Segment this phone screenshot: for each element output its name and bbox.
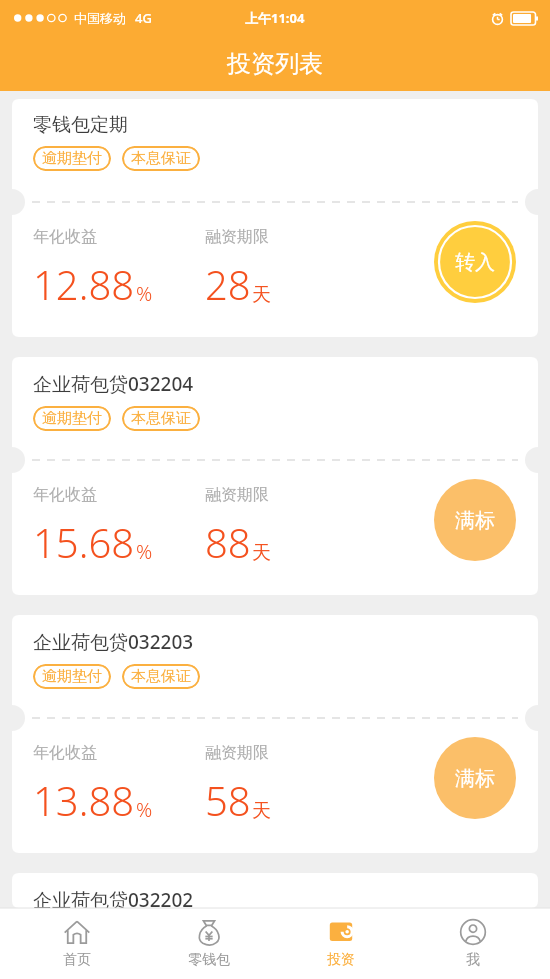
staticText: 逾期垫付 — [42, 667, 102, 686]
staticText: 企业荷包贷032203 — [33, 629, 194, 655]
button[interactable]: 本息保证 — [131, 409, 191, 428]
button[interactable]: 投资 — [286, 918, 396, 969]
staticText: 88 — [205, 515, 251, 569]
button[interactable]: 满标 — [434, 479, 516, 561]
staticText: 融资期限 — [205, 227, 269, 247]
staticText: 中国移动 — [74, 10, 126, 26]
button[interactable]: 逾期垫付 — [42, 409, 102, 428]
staticText: 天 — [252, 541, 271, 565]
staticText: 58 — [205, 773, 251, 827]
staticText: 4G — [135, 9, 152, 27]
staticText: 15.68 — [33, 515, 135, 569]
button[interactable]: 首页 — [22, 918, 132, 969]
staticText: 28 — [205, 257, 251, 311]
button[interactable]: 零钱包 — [154, 918, 264, 969]
button[interactable]: 本息保证 — [131, 667, 191, 686]
staticText: 零钱包定期 — [33, 113, 128, 137]
staticText: 年化收益 — [33, 485, 97, 505]
button[interactable]: 本息保证 — [131, 149, 191, 168]
staticText: 本息保证 — [131, 667, 191, 686]
staticText: 12.88 — [33, 257, 135, 311]
staticText: % — [136, 796, 153, 823]
staticText: 融资期限 — [205, 743, 269, 763]
staticText: 我 — [466, 951, 480, 969]
button[interactable]: 企业荷包贷032202 — [12, 873, 538, 908]
button[interactable]: 零钱包定期 — [12, 99, 538, 337]
button[interactable]: 我 — [418, 918, 528, 969]
staticText: 首页 — [63, 951, 91, 969]
button[interactable]: 逾期垫付 — [42, 149, 102, 168]
staticText: 本息保证 — [131, 149, 191, 168]
staticText: 逾期垫付 — [42, 409, 102, 428]
staticText: 天 — [252, 799, 271, 823]
staticText: 上午11:04 — [245, 9, 305, 27]
staticText: 投资 — [327, 951, 355, 969]
staticText: 企业荷包贷032204 — [33, 371, 194, 397]
staticText: 天 — [252, 283, 271, 307]
staticText: 逾期垫付 — [42, 149, 102, 168]
staticText: 满标 — [455, 766, 495, 791]
button[interactable]: 满标 — [434, 737, 516, 819]
button[interactable]: 企业荷包贷032203 — [12, 615, 538, 853]
staticText: 年化收益 — [33, 227, 97, 247]
staticText: 13.88 — [33, 773, 135, 827]
staticText: 投资列表 — [227, 49, 323, 79]
button[interactable]: 逾期垫付 — [42, 667, 102, 686]
staticText: 转入 — [455, 250, 495, 275]
button[interactable]: 企业荷包贷032204 — [12, 357, 538, 595]
staticText: 融资期限 — [205, 485, 269, 505]
staticText: 年化收益 — [33, 743, 97, 763]
button[interactable]: 转入 — [434, 221, 516, 303]
staticText: 本息保证 — [131, 409, 191, 428]
staticText: 满标 — [455, 508, 495, 533]
staticText: 零钱包 — [188, 951, 230, 969]
staticText: % — [136, 280, 153, 307]
staticText: % — [136, 538, 153, 565]
staticText: 企业荷包贷032202 — [33, 887, 194, 908]
